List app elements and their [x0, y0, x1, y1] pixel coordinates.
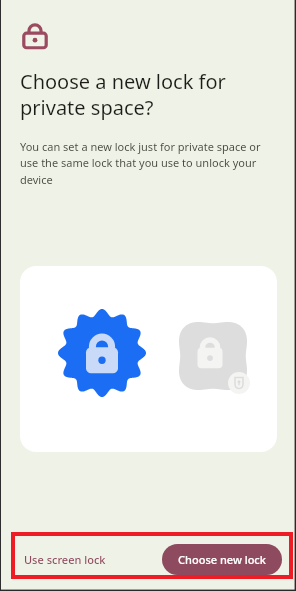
- staticText: Choose new lock: [178, 552, 266, 567]
- staticText: Use screen lock: [24, 552, 106, 567]
- staticText: You can set a new lock just for private …: [20, 139, 278, 188]
- button[interactable]: Choose new lock: [162, 544, 282, 575]
- button[interactable]: Use screen lock: [20, 546, 110, 573]
- staticText: Choose a new lock for private space?: [20, 68, 226, 121]
